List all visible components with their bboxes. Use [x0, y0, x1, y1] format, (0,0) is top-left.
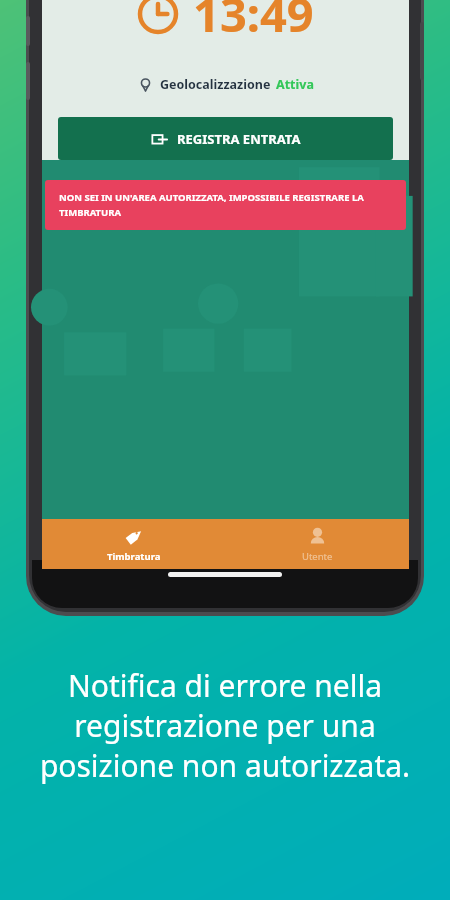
staticText: Notifica di errore nella registrazione p…	[30, 665, 420, 786]
staticText: Attiva	[276, 76, 314, 93]
staticText: Geolocalizzazione	[160, 76, 271, 93]
staticText: Utente	[302, 550, 333, 563]
staticText: 13:49	[193, 0, 314, 46]
button[interactable]: Utente	[225, 519, 409, 569]
staticText: REGISTRA ENTRATA	[177, 130, 301, 148]
button[interactable]: Timbratura	[42, 519, 225, 569]
staticText: NON SEI IN UN'AREA AUTORIZZATA, IMPOSSIB…	[59, 191, 392, 219]
staticText: Timbratura	[107, 550, 161, 563]
button[interactable]: REGISTRA ENTRATA	[58, 117, 393, 160]
button[interactable]: NON SEI IN UN'AREA AUTORIZZATA, IMPOSSIB…	[45, 180, 406, 230]
